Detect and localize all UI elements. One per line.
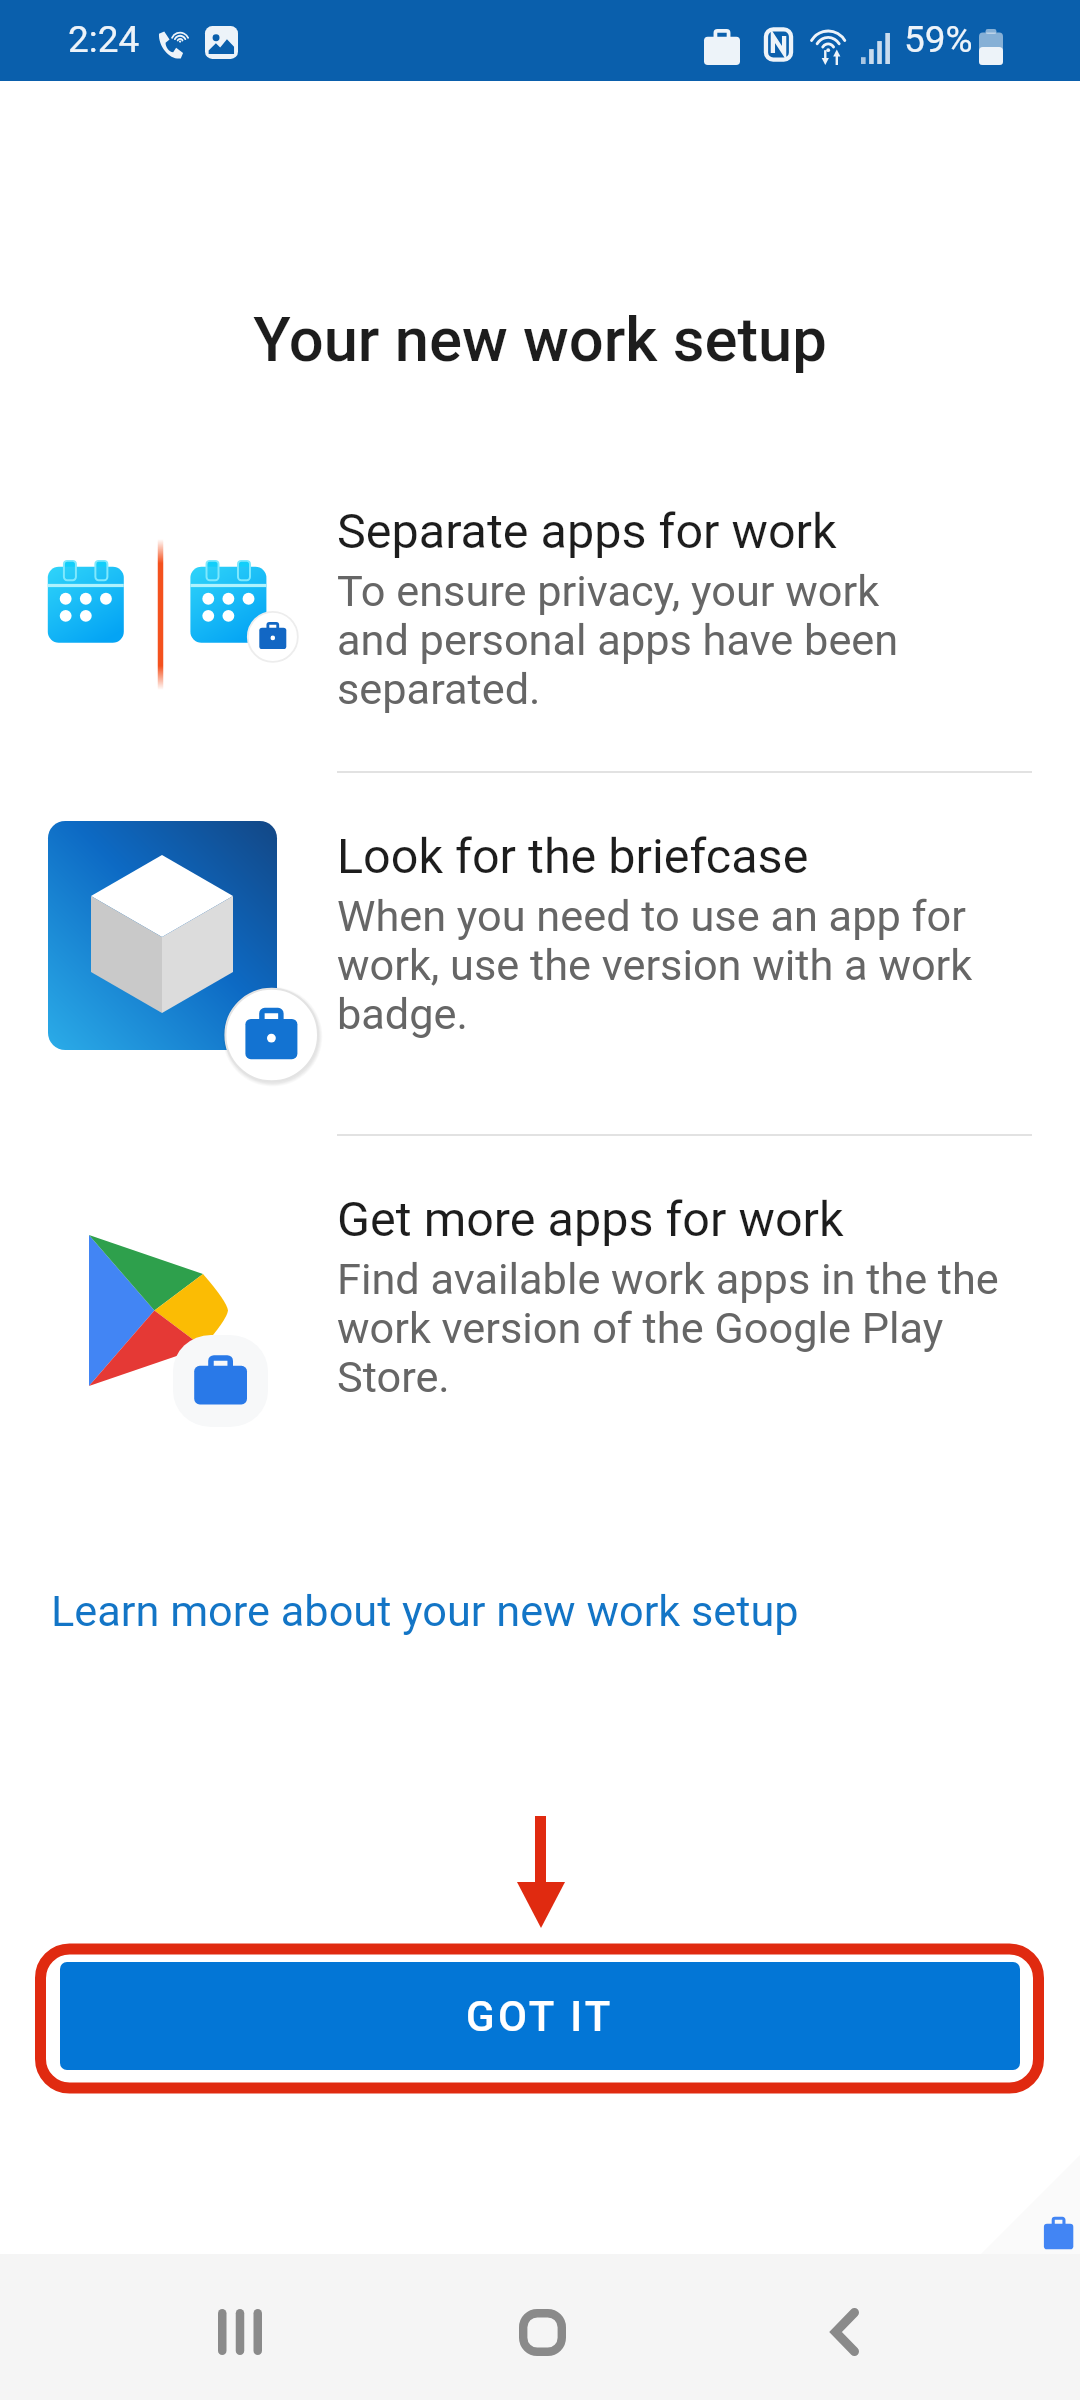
- staticText: Get more apps for work: [337, 1191, 844, 1248]
- staticText: 59%: [904, 18, 973, 61]
- button[interactable]: GOT IT: [60, 1962, 1020, 2070]
- staticText: Separate apps for work: [337, 503, 837, 560]
- staticText: 2:24: [68, 18, 140, 61]
- button[interactable]: Separate apps for work: [0, 503, 1080, 733]
- staticText: GOT IT: [466, 1992, 614, 2041]
- staticText: Learn more about your new work setup: [51, 1586, 799, 1637]
- staticText: Find available work apps in the the work…: [337, 1254, 999, 1402]
- button[interactable]: Recents: [150, 2269, 330, 2395]
- button[interactable]: Look for the briefcase: [0, 828, 1080, 1088]
- button[interactable]: Home: [452, 2269, 632, 2395]
- staticText: Look for the briefcase: [337, 828, 809, 885]
- staticText: When you need to use an app for work, us…: [337, 891, 973, 1039]
- button[interactable]: Back: [755, 2269, 935, 2395]
- staticText: To ensure privacy, your work and persona…: [337, 566, 899, 714]
- button[interactable]: Learn more about your new work setup: [51, 1586, 799, 1637]
- button[interactable]: Get more apps for work: [0, 1191, 1080, 1431]
- staticText: Your new work setup: [0, 304, 1080, 376]
